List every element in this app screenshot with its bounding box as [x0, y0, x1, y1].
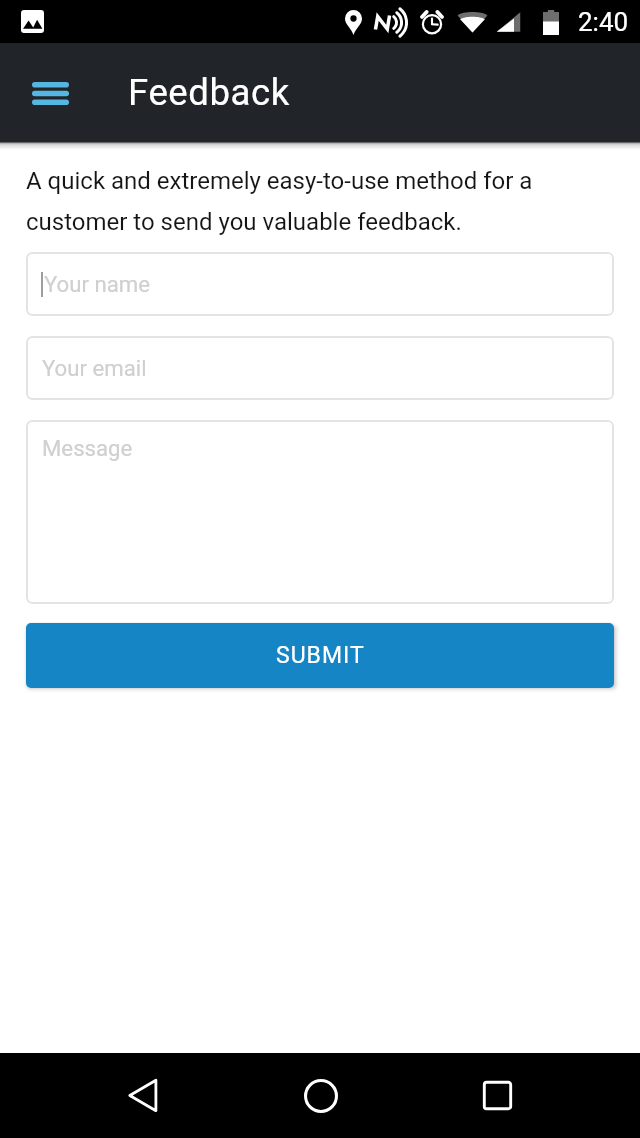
staticText: Feedback: [128, 71, 290, 114]
staticText: 2:40: [578, 7, 629, 37]
staticText: A quick and extremely easy-to-use method…: [26, 167, 614, 236]
button[interactable]: Back: [97, 1053, 188, 1138]
button[interactable]: Your name: [26, 252, 614, 316]
button[interactable]: Home: [275, 1053, 366, 1138]
staticText: Your email: [42, 355, 147, 381]
button[interactable]: Recent apps: [452, 1053, 543, 1138]
button[interactable]: Open navigation menu: [14, 57, 86, 129]
button[interactable]: Your email: [26, 336, 614, 400]
button[interactable]: SUBMIT: [26, 623, 614, 688]
staticText: Message: [42, 435, 133, 461]
button[interactable]: Message: [26, 420, 614, 604]
staticText: SUBMIT: [276, 642, 365, 669]
staticText: Your name: [44, 271, 151, 297]
